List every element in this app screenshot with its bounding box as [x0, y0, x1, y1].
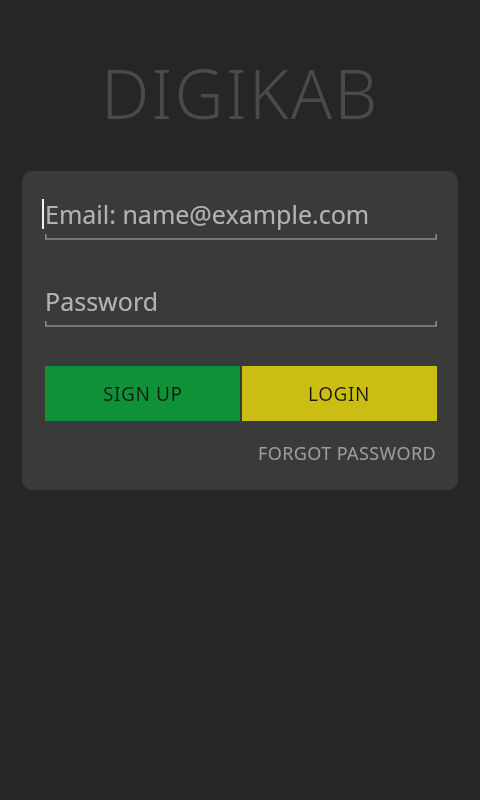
button[interactable]: SIGN UP: [45, 366, 240, 421]
staticText: FORGOT PASSWORD: [258, 441, 437, 466]
button[interactable]: LOGIN: [242, 366, 437, 421]
button[interactable]: FORGOT PASSWORD: [258, 435, 437, 472]
button[interactable]: Password: [45, 280, 437, 322]
staticText: Email: name@example.com: [45, 197, 370, 231]
staticText: SIGN UP: [103, 381, 183, 407]
staticText: DIGIKAB: [0, 46, 480, 139]
staticText: Password: [45, 284, 159, 318]
staticText: LOGIN: [308, 381, 371, 407]
button[interactable]: Email: name@example.com: [45, 193, 437, 235]
